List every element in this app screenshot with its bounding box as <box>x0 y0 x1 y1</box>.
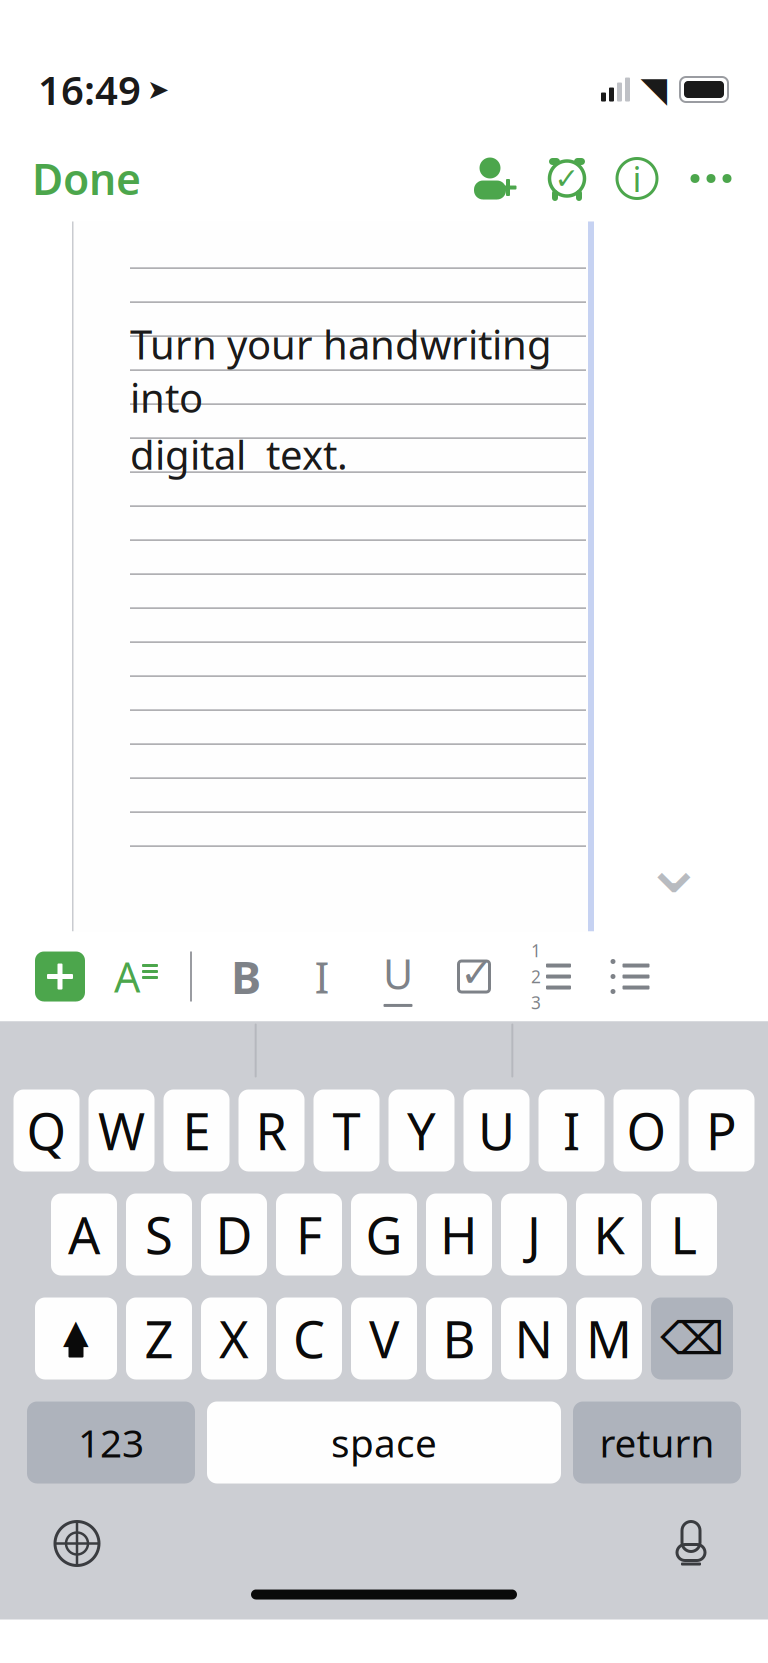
button[interactable]: Text Formatting <box>98 931 174 1021</box>
staticText: D <box>215 1201 252 1268</box>
button[interactable]: P <box>688 1089 754 1171</box>
staticText: M <box>586 1305 632 1372</box>
staticText: ◥ <box>640 70 667 109</box>
button[interactable]: Reminder <box>532 135 602 221</box>
button[interactable]: 123 <box>27 1401 195 1483</box>
staticText: space <box>331 1417 437 1468</box>
staticText: 123 <box>78 1417 144 1468</box>
staticText: Turn your handwriting into <box>130 317 552 424</box>
staticText: F <box>296 1201 322 1268</box>
button[interactable]: X <box>201 1297 267 1379</box>
button[interactable]: return <box>573 1401 741 1483</box>
staticText: ✓ <box>460 950 494 996</box>
button[interactable]: W <box>88 1089 154 1171</box>
button[interactable]: Bulleted List <box>590 931 670 1021</box>
button[interactable]: Add People <box>462 135 532 221</box>
button[interactable]: O <box>613 1089 679 1171</box>
button[interactable]: Next Keyboard <box>32 1505 122 1581</box>
staticText: B <box>442 1305 475 1372</box>
button[interactable]: Delete <box>651 1297 733 1379</box>
staticText: B <box>231 946 261 1007</box>
staticText: K <box>593 1201 624 1268</box>
button[interactable]: Info <box>602 135 672 221</box>
button[interactable]: V <box>351 1297 417 1379</box>
staticText: X <box>219 1305 249 1372</box>
button[interactable]: More <box>672 135 750 221</box>
button[interactable]: G <box>351 1193 417 1275</box>
staticText: U <box>478 1097 515 1164</box>
button[interactable]: I <box>538 1089 604 1171</box>
button[interactable]: U <box>463 1089 529 1171</box>
staticText: W <box>98 1097 145 1164</box>
button[interactable]: Shift <box>35 1297 117 1379</box>
button[interactable]: N <box>501 1297 567 1379</box>
button[interactable]: C <box>276 1297 342 1379</box>
staticText: U <box>383 946 413 1001</box>
button[interactable]: K <box>576 1193 642 1275</box>
staticText: I <box>563 1097 580 1164</box>
staticText: T <box>332 1097 360 1164</box>
button[interactable]: S <box>126 1193 192 1275</box>
button[interactable]: space <box>207 1401 561 1483</box>
button[interactable]: M <box>576 1297 642 1379</box>
staticText: L <box>670 1201 697 1268</box>
staticText: 2 <box>531 965 541 988</box>
button[interactable]: J <box>501 1193 567 1275</box>
button[interactable]: Dictate <box>646 1505 736 1581</box>
button[interactable]: Italic <box>284 931 360 1021</box>
staticText: return <box>599 1417 714 1468</box>
staticText: A <box>68 1201 100 1268</box>
button[interactable]: Numbered List <box>512 931 590 1021</box>
staticText: H <box>440 1201 478 1268</box>
button[interactable]: Y <box>388 1089 454 1171</box>
staticText: ➤ <box>147 74 169 105</box>
staticText: Q <box>26 1097 66 1164</box>
staticText: I <box>314 947 329 1006</box>
button[interactable]: Underline <box>360 931 436 1021</box>
button[interactable]: H <box>426 1193 492 1275</box>
staticText: ✓ <box>554 162 579 195</box>
staticText: G <box>365 1201 402 1268</box>
button[interactable]: E <box>163 1089 229 1171</box>
staticText: C <box>293 1305 325 1372</box>
button[interactable]: Checklist <box>436 931 512 1021</box>
button[interactable]: Add Attachment <box>22 931 98 1021</box>
button[interactable]: Q <box>13 1089 79 1171</box>
staticText: Done <box>32 150 141 207</box>
staticText: i <box>632 155 641 201</box>
button[interactable]: Z <box>126 1297 192 1379</box>
staticText: P <box>706 1097 737 1164</box>
staticText: ▲ <box>63 1313 89 1350</box>
staticText: O <box>626 1097 666 1164</box>
staticText: digital text. <box>130 428 348 481</box>
button[interactable]: Collapse <box>638 829 710 901</box>
staticText: 1 <box>531 939 541 962</box>
staticText: A <box>114 949 140 1004</box>
button[interactable]: D <box>201 1193 267 1275</box>
button[interactable]: L <box>651 1193 717 1275</box>
button[interactable]: T <box>313 1089 379 1171</box>
staticText: N <box>514 1305 553 1372</box>
button[interactable]: R <box>238 1089 304 1171</box>
staticText: ⌫ <box>660 1313 724 1364</box>
staticText: Z <box>144 1305 173 1372</box>
staticText: S <box>145 1201 173 1268</box>
staticText: Y <box>407 1097 436 1164</box>
staticText: J <box>527 1201 541 1268</box>
staticText: R <box>255 1097 287 1164</box>
button[interactable]: A <box>51 1193 117 1275</box>
staticText: ⌄ <box>641 822 706 909</box>
button[interactable]: Done <box>0 135 173 221</box>
staticText: V <box>369 1305 399 1372</box>
button[interactable]: Bold <box>208 931 284 1021</box>
button[interactable]: B <box>426 1297 492 1379</box>
staticText: 3 <box>531 991 541 1014</box>
button[interactable]: F <box>276 1193 342 1275</box>
staticText: 16:49 <box>38 63 141 116</box>
staticText: E <box>182 1097 210 1164</box>
